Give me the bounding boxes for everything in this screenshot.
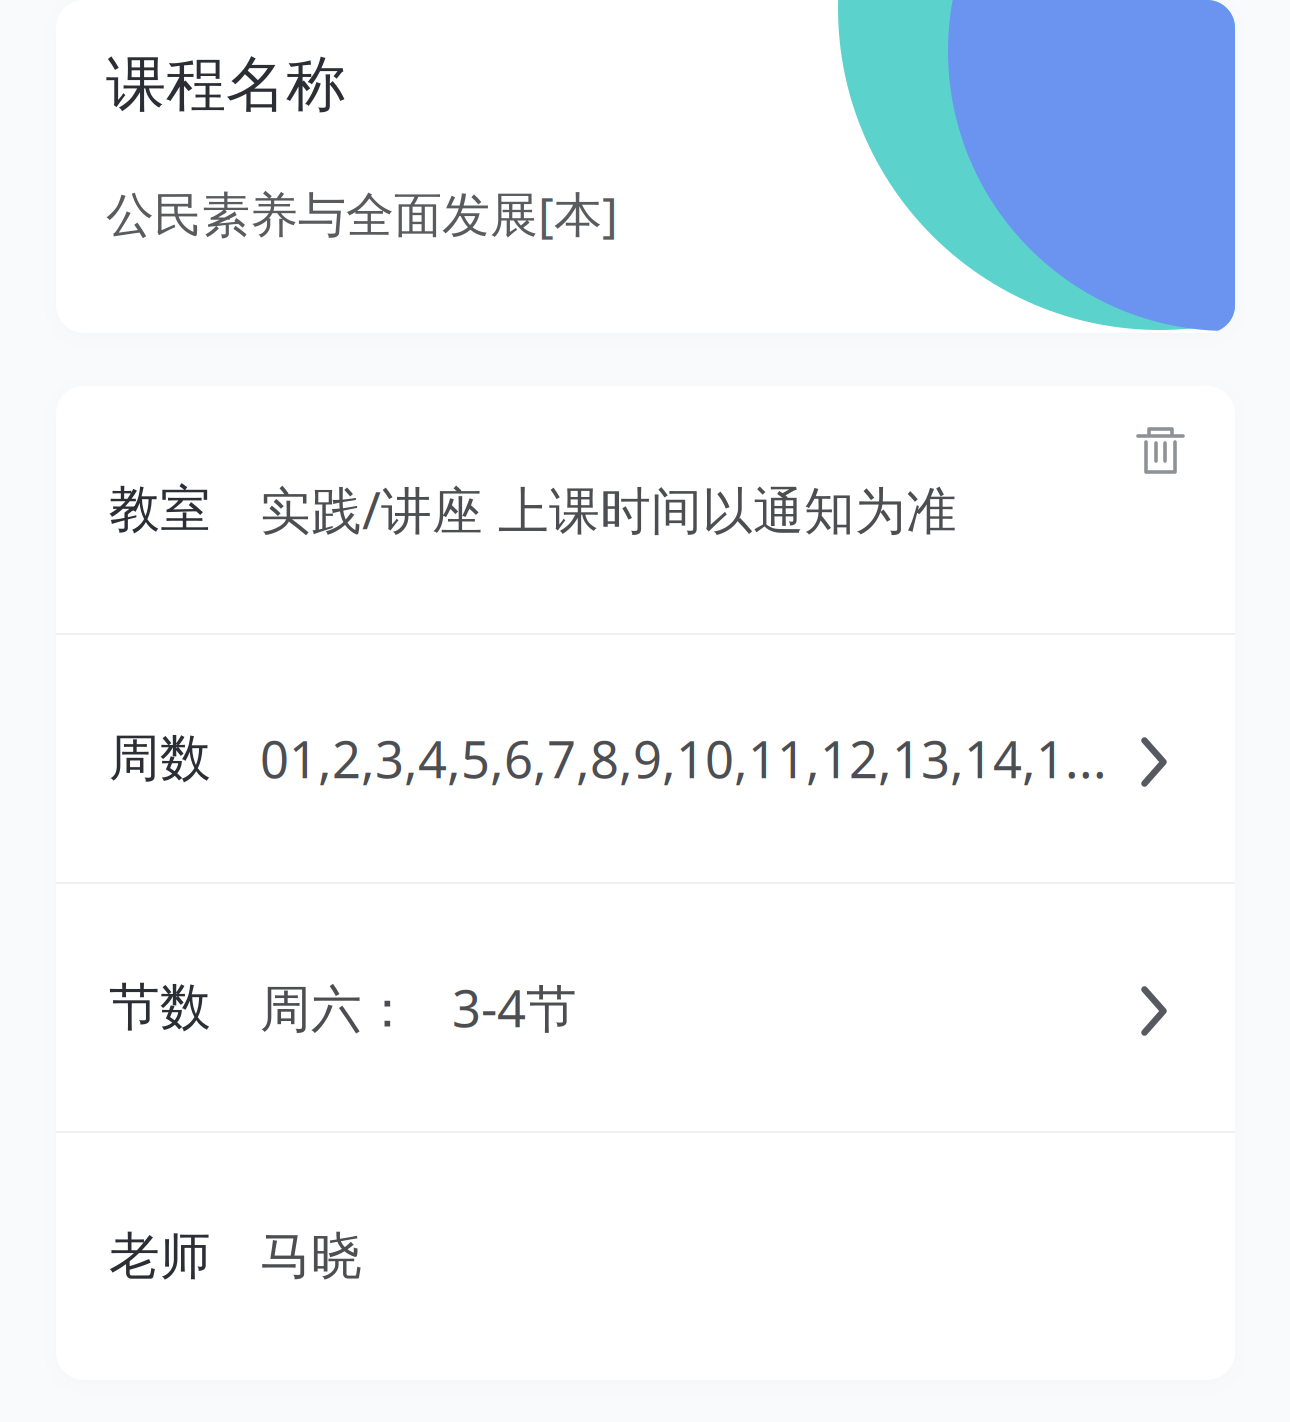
staticText: 周数: [109, 727, 211, 790]
staticText: 公民素养与全面发展[本]: [106, 182, 618, 245]
staticText: 节数: [109, 976, 211, 1039]
button[interactable]: 周数: [56, 635, 1235, 882]
staticText: 马晓: [260, 1225, 362, 1288]
staticText: 课程名称: [106, 48, 346, 122]
button[interactable]: Delete course: [1136, 386, 1235, 475]
staticText: 实践/讲座 上课时间以通知为准: [260, 476, 957, 543]
button[interactable]: 节数: [56, 884, 1235, 1131]
staticText: 01,2,3,4,5,6,7,8,9,10,11,12,13,14,1...: [260, 725, 1107, 792]
staticText: 周六： 3-4节: [260, 974, 577, 1041]
button[interactable]: 老师: [56, 1133, 1235, 1380]
staticText: 教室: [109, 478, 211, 541]
staticText: 老师: [109, 1225, 211, 1288]
button[interactable]: 教室: [56, 386, 1235, 633]
